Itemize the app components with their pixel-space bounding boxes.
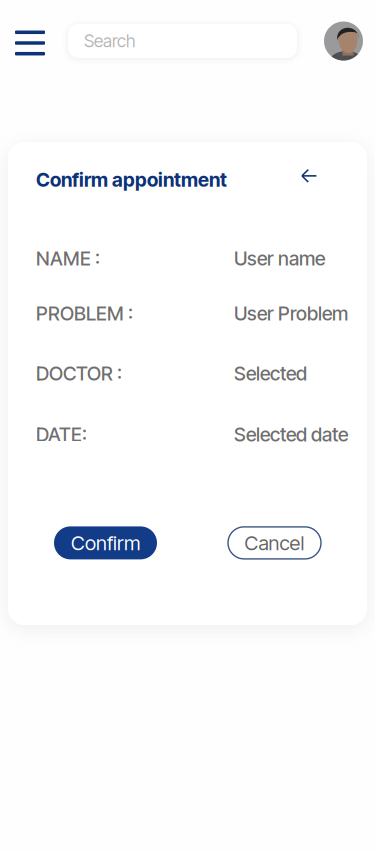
button[interactable]: Menu <box>0 11 68 71</box>
staticText: Cancel <box>244 531 304 555</box>
button[interactable]: Back <box>295 169 323 191</box>
staticText: Selected <box>234 362 307 385</box>
button[interactable]: Confirm <box>54 526 157 559</box>
button[interactable]: Profile <box>324 21 375 60</box>
staticText: Selected date <box>234 423 348 446</box>
staticText: DOCTOR : <box>36 362 122 385</box>
staticText: Search <box>84 30 135 51</box>
staticText: User Problem <box>234 302 348 325</box>
staticText: User name <box>234 247 325 270</box>
staticText: Confirm appointment <box>36 168 227 191</box>
staticText: PROBLEM : <box>36 302 133 325</box>
staticText: NAME : <box>36 247 100 270</box>
button[interactable]: Cancel <box>228 527 321 559</box>
staticText: DATE: <box>36 423 87 446</box>
staticText: Confirm <box>71 531 140 555</box>
